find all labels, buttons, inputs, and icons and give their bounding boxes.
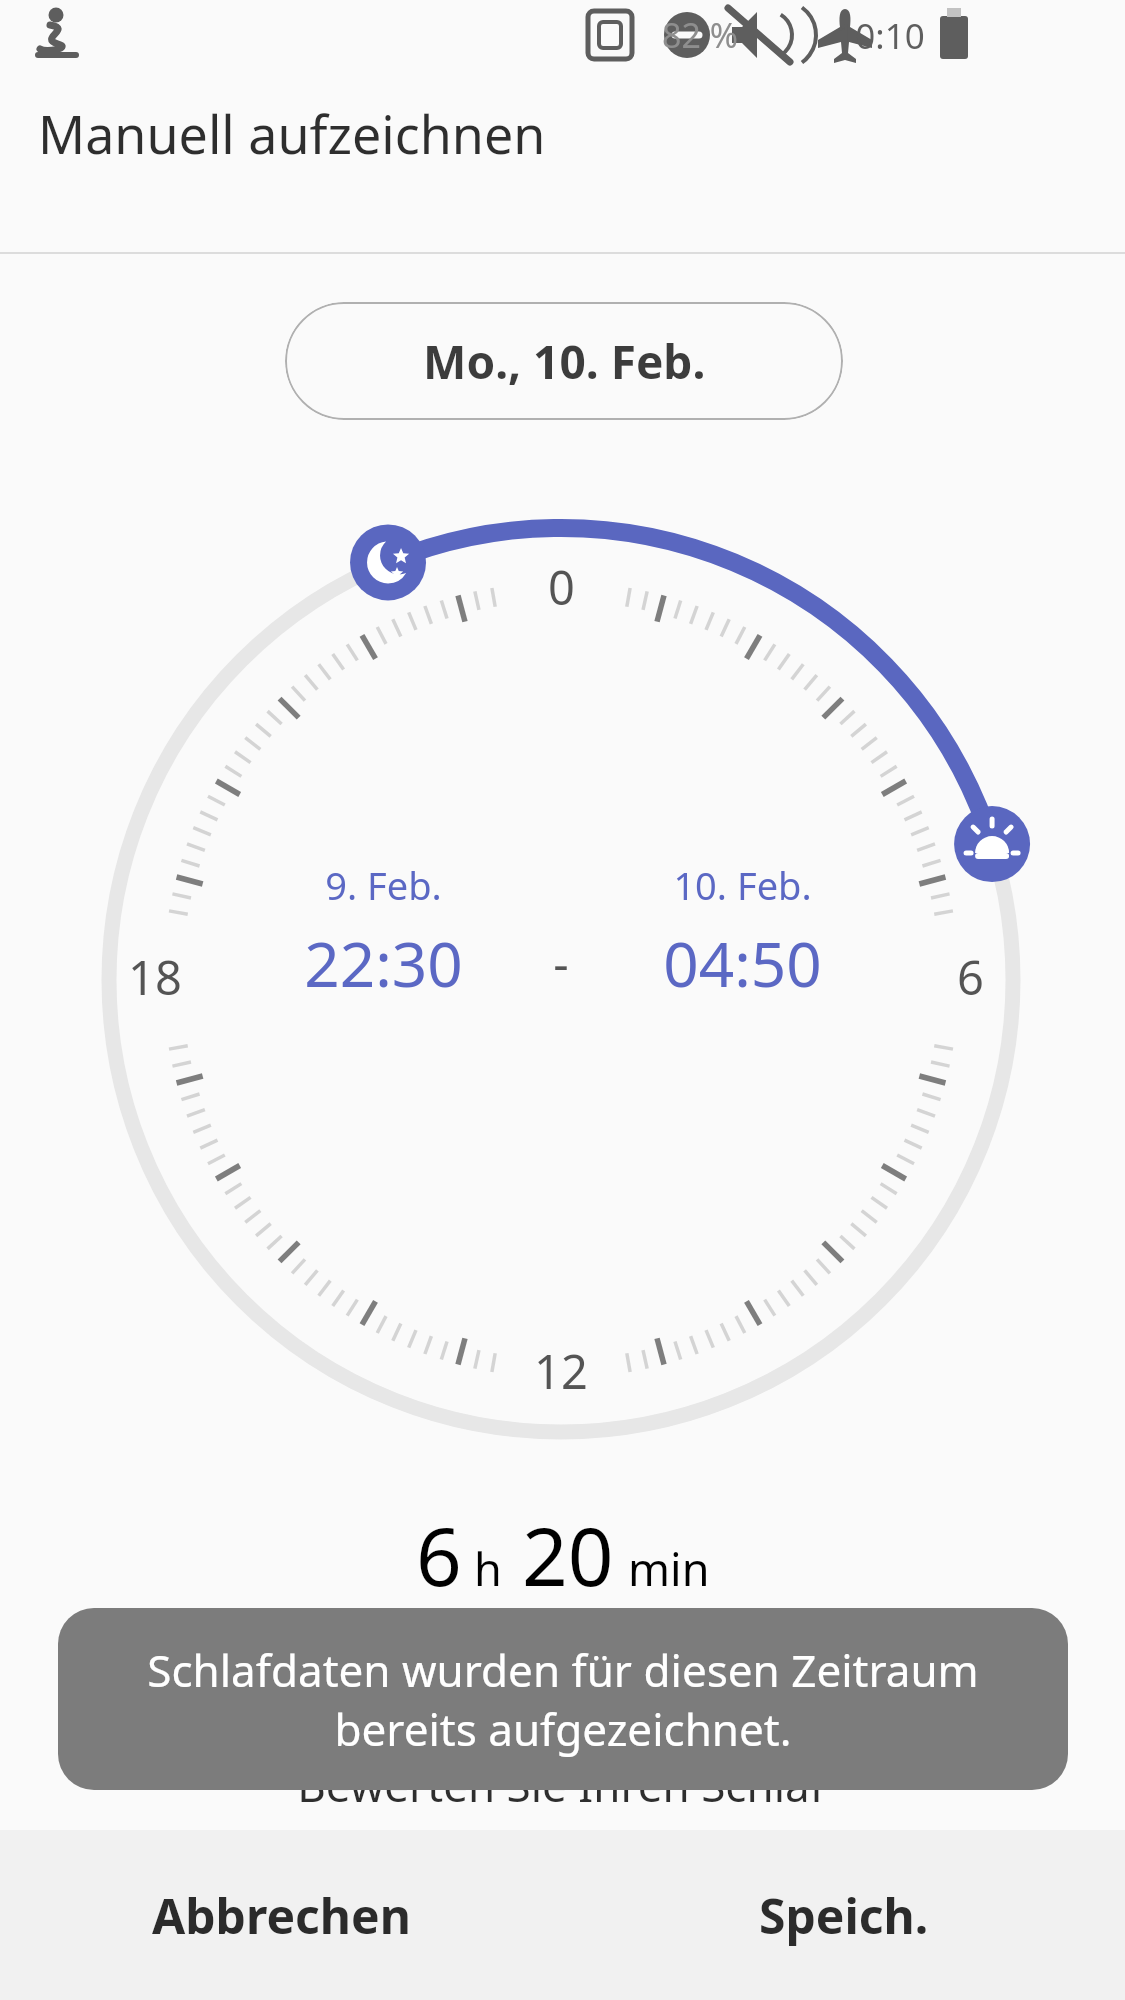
staticText: 9. Feb. — [325, 859, 442, 911]
staticText: 20 — [522, 1500, 614, 1609]
staticText: 18 — [128, 945, 182, 1009]
staticText: Manuell aufzeichnen — [38, 98, 546, 169]
staticText: 12 — [534, 1339, 588, 1403]
staticText: Speich. — [759, 1883, 929, 1948]
button[interactable]: Speich. — [562, 1830, 1125, 2000]
button[interactable]: Mo., 10. Feb. — [285, 302, 843, 420]
staticText: Schlafzeit — [467, 1629, 655, 1686]
staticText: min — [628, 1538, 710, 1599]
staticText: 10. Feb. — [673, 859, 812, 911]
staticText: Mo., 10. Feb. — [423, 330, 706, 393]
staticText: 6 — [957, 945, 984, 1009]
staticText: 6 — [416, 1500, 462, 1609]
staticText: 22:30 — [304, 921, 463, 1005]
staticText: Schlafdaten wurden für diesen Zeitraum b… — [102, 1640, 1024, 1758]
staticText: 04:50 — [663, 921, 822, 1005]
staticText: Abbrechen — [152, 1883, 411, 1948]
staticText: - — [553, 930, 569, 995]
button[interactable]: Abbrechen — [0, 1830, 562, 2000]
staticText: 0 — [548, 555, 575, 619]
staticText: 10:10 — [835, 12, 925, 60]
staticText: 82 % — [662, 12, 738, 58]
staticText: Bewerten Sie Ihren Schlaf — [297, 1755, 825, 1815]
staticText: h — [474, 1538, 502, 1599]
